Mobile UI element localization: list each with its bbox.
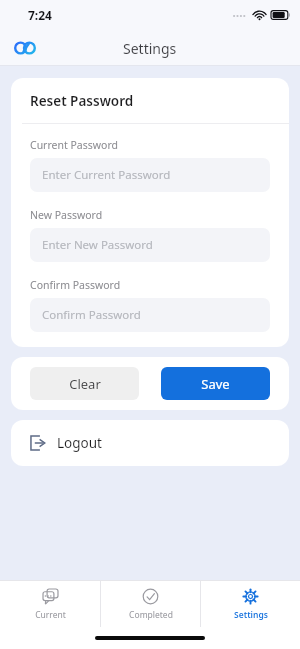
staticText: Enter New Password: [42, 237, 153, 253]
button[interactable]: Clear: [30, 367, 139, 400]
button[interactable]: Confirm Password: [30, 298, 270, 332]
staticText: Confirm Password: [42, 307, 141, 323]
staticText: Save: [201, 375, 230, 393]
staticText: Logout: [57, 434, 102, 452]
staticText: Current: [35, 609, 66, 621]
button[interactable]: App logo: [8, 31, 42, 65]
staticText: Current Password: [30, 138, 119, 152]
staticText: Clear: [69, 375, 101, 393]
staticText: Confirm Password: [30, 278, 121, 292]
staticText: Settings: [234, 609, 268, 621]
staticText: Reset Password: [30, 92, 134, 110]
staticText: Settings: [123, 39, 177, 58]
staticText: 7:24: [28, 7, 52, 23]
button[interactable]: Save: [161, 367, 270, 400]
button[interactable]: Enter Current Password: [30, 158, 270, 192]
button[interactable]: Logout: [11, 420, 289, 466]
staticText: Completed: [129, 609, 173, 621]
button[interactable]: Completed: [101, 581, 200, 621]
button[interactable]: Settings: [201, 581, 300, 621]
staticText: New Password: [30, 208, 103, 222]
button[interactable]: Enter New Password: [30, 228, 270, 262]
staticText: Enter Current Password: [42, 167, 171, 183]
button[interactable]: Current: [0, 581, 100, 621]
